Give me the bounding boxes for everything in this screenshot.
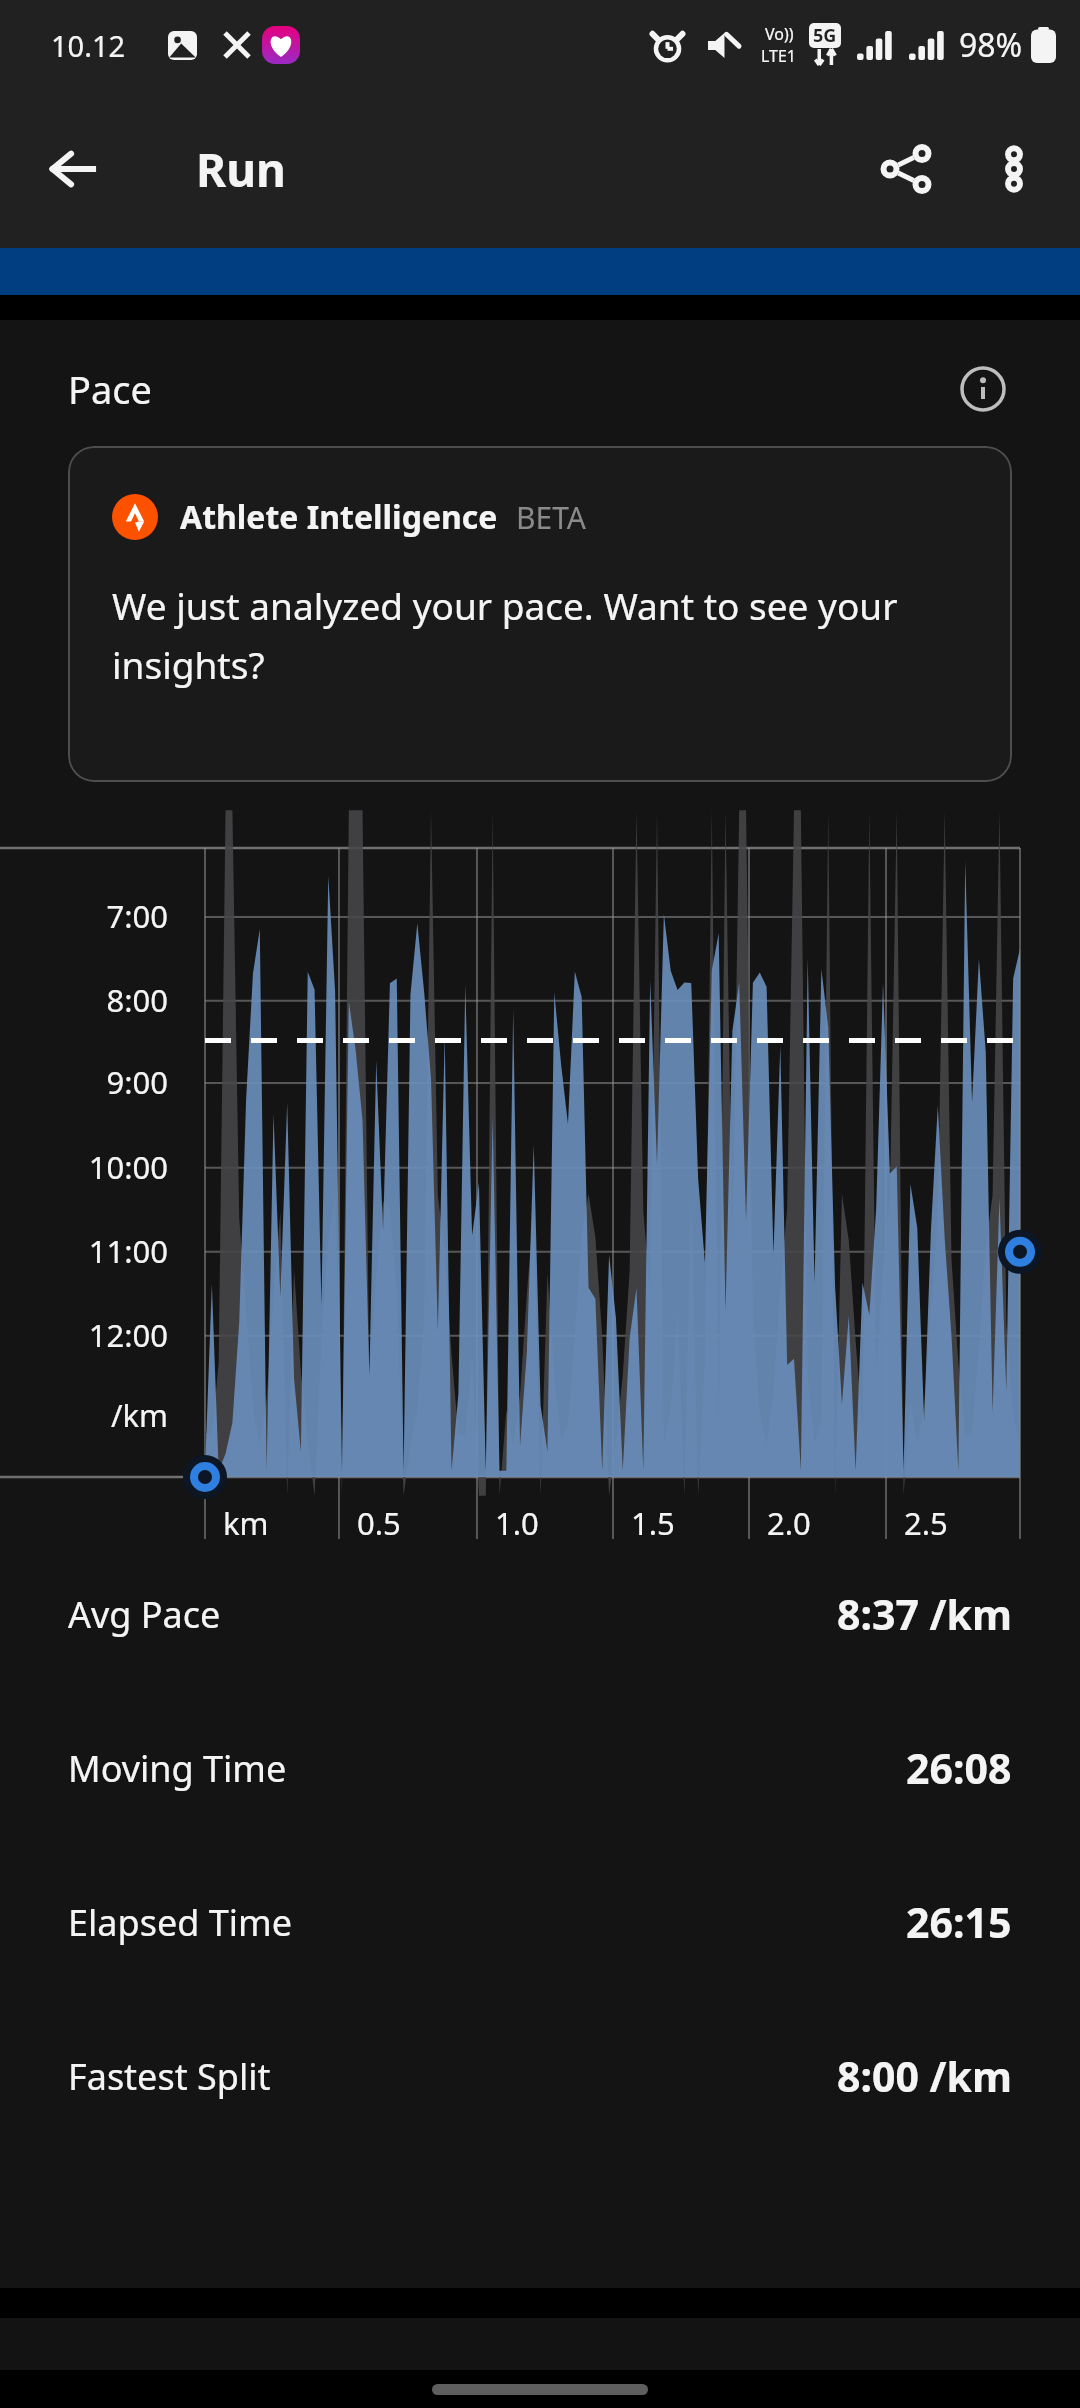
staticText: Fastest Split xyxy=(68,2052,271,2101)
staticText: Moving Time xyxy=(68,1744,287,1793)
button[interactable]: Back xyxy=(30,125,118,213)
staticText: Athlete Intelligence xyxy=(180,495,498,539)
staticText: Vo)) xyxy=(765,23,794,45)
button[interactable]: Share xyxy=(860,123,952,215)
staticText: 10.12 xyxy=(51,26,126,65)
staticText: 7:00 xyxy=(0,895,168,937)
staticText: km xyxy=(223,1502,269,1544)
staticText: 98% xyxy=(959,23,1023,67)
staticText: BETA xyxy=(516,497,586,538)
button[interactable]: Fastest Split xyxy=(0,2048,1080,2104)
staticText: 8:00 /km xyxy=(837,2048,1012,2104)
button[interactable]: Athlete Intelligence xyxy=(68,446,1012,782)
staticText: /km xyxy=(0,1394,168,1436)
staticText: Elapsed Time xyxy=(68,1898,292,1947)
staticText: 1.5 xyxy=(631,1502,675,1544)
staticText: 2.0 xyxy=(767,1502,811,1544)
button[interactable]: Info xyxy=(954,360,1012,418)
staticText: 8:37 /km xyxy=(837,1586,1012,1642)
button[interactable]: Moving Time xyxy=(0,1740,1080,1796)
staticText: Pace xyxy=(68,363,152,415)
staticText: 12:00 xyxy=(0,1314,168,1356)
staticText: 11:00 xyxy=(0,1230,168,1272)
staticText: 26:08 xyxy=(906,1740,1012,1796)
staticText: 5G xyxy=(813,23,837,48)
staticText: 26:15 xyxy=(906,1894,1012,1950)
staticText: 9:00 xyxy=(0,1061,168,1103)
staticText: 8:00 xyxy=(0,979,168,1021)
staticText: Run xyxy=(196,138,286,201)
staticText: 0.5 xyxy=(357,1502,401,1544)
staticText: We just analyzed your pace. Want to see … xyxy=(112,580,982,690)
staticText: 1.0 xyxy=(495,1502,539,1544)
button[interactable]: Elapsed Time xyxy=(0,1894,1080,1950)
staticText: 10:00 xyxy=(0,1146,168,1188)
button[interactable]: Avg Pace xyxy=(0,1586,1080,1642)
staticText: LTE1 xyxy=(761,45,797,67)
staticText: Avg Pace xyxy=(68,1590,221,1639)
button[interactable]: Pace xyxy=(0,360,1080,418)
button[interactable]: More options xyxy=(968,123,1060,215)
staticText: 2.5 xyxy=(904,1502,948,1544)
